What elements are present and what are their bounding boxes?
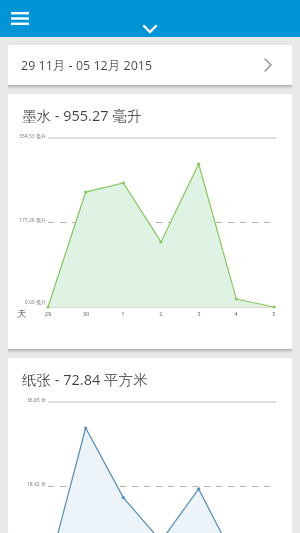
button[interactable]: 29 11月 - 05 12月 2015	[8, 45, 292, 85]
staticText: 3	[191, 310, 207, 318]
staticText: 29	[40, 310, 56, 318]
staticText: 177.26 毫升	[8, 217, 46, 224]
staticText: 354.53 毫升	[8, 133, 46, 140]
staticText: 5	[266, 310, 282, 318]
staticText: 18.42 米	[8, 481, 46, 488]
button[interactable]: Menu	[5, 3, 35, 33]
staticText: 29 11月 - 05 12月 2015	[21, 57, 153, 74]
button[interactable]: Expand	[138, 22, 162, 36]
staticText: 4	[228, 310, 244, 318]
staticText: 0.00 毫升	[8, 299, 46, 306]
staticText: 纸张 - 72.84 平方米	[22, 369, 148, 389]
staticText: 36.85 米	[8, 397, 46, 404]
staticText: 墨水 - 955.27 毫升	[22, 105, 142, 125]
staticText: 1	[115, 310, 131, 318]
staticText: 30	[78, 310, 94, 318]
button[interactable]: 墨水 - 955.27 毫升	[8, 94, 292, 349]
staticText: 2	[153, 310, 169, 318]
staticText: 天	[17, 308, 27, 320]
button[interactable]: 纸张 - 72.84 平方米	[8, 358, 292, 533]
